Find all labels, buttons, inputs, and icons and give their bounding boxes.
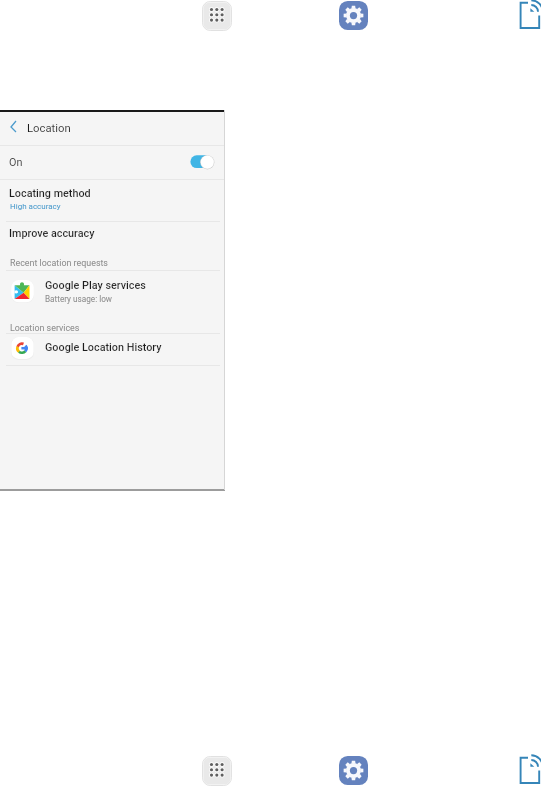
button[interactable]: Share file: [516, 0, 541, 30]
button[interactable]: Apps: [202, 1, 232, 31]
button[interactable]: [0, 112, 225, 144]
staticText: On: [9, 156, 23, 169]
button[interactable]: Location on: [189, 154, 215, 172]
staticText: Improve accuracy: [9, 227, 95, 240]
staticText: Battery usage: low: [45, 294, 112, 304]
button[interactable]: Navigate up: [4, 114, 22, 132]
staticText: Google Location History: [45, 341, 162, 354]
button[interactable]: [0, 334, 225, 365]
button[interactable]: [0, 180, 225, 220]
button[interactable]: Settings: [339, 1, 368, 30]
staticText: Google Play services: [45, 279, 146, 292]
button[interactable]: [0, 271, 225, 322]
staticText: High accuracy: [10, 202, 61, 211]
button[interactable]: [0, 222, 225, 259]
button[interactable]: [0, 146, 225, 179]
staticText: Location services: [10, 323, 80, 333]
button[interactable]: Share file: [516, 755, 541, 785]
button[interactable]: Apps: [202, 756, 232, 786]
staticText: Locating method: [9, 187, 91, 200]
staticText: Recent location requests: [10, 258, 108, 268]
button[interactable]: Settings: [339, 756, 368, 785]
staticText: Location: [27, 122, 71, 135]
